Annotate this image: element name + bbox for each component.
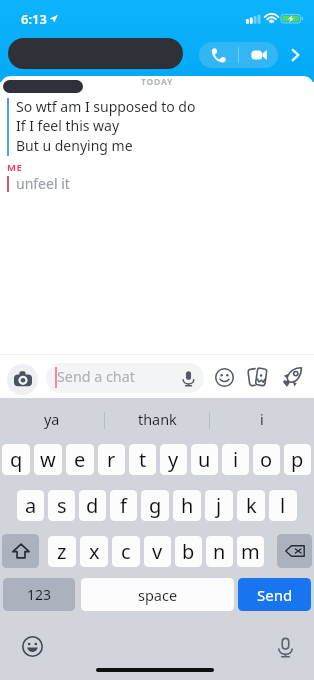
staticText: h [181, 492, 194, 519]
staticText: b [182, 538, 195, 565]
staticText: w [40, 446, 56, 473]
button[interactable]: ya [0, 398, 104, 442]
button[interactable]: space [81, 578, 234, 611]
button[interactable]: h [173, 490, 201, 521]
button[interactable]: m [237, 536, 264, 567]
button[interactable]: Emoji keyboard [21, 635, 44, 658]
staticText: TODAY [141, 76, 174, 88]
button[interactable]: j [205, 490, 233, 521]
staticText: But u denying me [16, 136, 133, 155]
button[interactable]: Emoji [213, 366, 235, 388]
staticText: u [198, 446, 211, 473]
button[interactable]: Camera [7, 364, 38, 395]
staticText: thank [138, 410, 177, 430]
staticText: m [241, 538, 260, 565]
button[interactable]: v [144, 536, 171, 567]
button[interactable]: Send rocket [281, 366, 303, 388]
staticText: d [86, 492, 99, 519]
button[interactable]: Video call [239, 42, 278, 68]
staticText: i [260, 410, 264, 430]
staticText: e [74, 446, 86, 473]
staticText: l [280, 492, 286, 519]
button[interactable]: p [284, 444, 311, 475]
staticText: z [57, 538, 67, 565]
button[interactable]: z [48, 536, 76, 567]
button[interactable]: r [98, 444, 125, 475]
button[interactable]: c [112, 536, 140, 567]
button[interactable]: o [253, 444, 280, 475]
button[interactable]: y [160, 444, 187, 475]
button[interactable]: k [237, 490, 265, 521]
staticText: If I feel this way [16, 116, 120, 135]
staticText: Send [257, 585, 293, 605]
staticText: Send a chat [57, 367, 135, 386]
button[interactable]: u [191, 444, 218, 475]
button[interactable]: t [129, 444, 156, 475]
staticText: y [168, 446, 179, 473]
staticText: unfeel it [16, 174, 70, 193]
staticText: i [233, 446, 239, 473]
staticText: k [246, 492, 257, 519]
button[interactable]: d [79, 490, 106, 521]
staticText: q [10, 446, 23, 473]
button[interactable]: q [2, 444, 30, 475]
staticText: n [213, 538, 226, 565]
staticText: t [139, 446, 147, 473]
staticText: 6:13 [21, 10, 47, 28]
staticText: 123 [27, 585, 52, 604]
staticText: p [291, 446, 304, 473]
staticText: j [216, 492, 222, 519]
button[interactable]: w [34, 444, 62, 475]
button[interactable]: Backspace [277, 534, 312, 568]
staticText: ME [7, 161, 23, 174]
staticText: f [120, 492, 127, 519]
button[interactable]: f [110, 490, 137, 521]
button[interactable]: i [210, 398, 314, 442]
staticText: g [149, 492, 162, 519]
button[interactable]: Conversation [8, 38, 183, 69]
staticText: o [260, 446, 273, 473]
button[interactable]: g [141, 490, 169, 521]
button[interactable]: s [48, 490, 75, 521]
button[interactable]: x [80, 536, 108, 567]
staticText: x [89, 538, 100, 565]
staticText: c [121, 538, 131, 565]
button[interactable]: Stickers [246, 366, 268, 388]
staticText: space [138, 585, 178, 605]
button[interactable]: n [206, 536, 233, 567]
staticText: r [107, 446, 116, 473]
staticText: s [57, 492, 67, 519]
button[interactable]: Shift [2, 534, 39, 568]
button[interactable] [46, 363, 204, 393]
button[interactable]: 123 [3, 578, 75, 611]
staticText: a [25, 492, 37, 519]
staticText: v [152, 538, 163, 565]
button[interactable]: l [269, 490, 297, 521]
staticText: So wtf am I supposed to do [16, 97, 196, 116]
button[interactable]: a [17, 490, 44, 521]
button[interactable]: e [66, 444, 94, 475]
button[interactable]: thank [105, 398, 209, 442]
button[interactable]: i [222, 444, 249, 475]
button[interactable]: Voice call [199, 42, 238, 68]
button[interactable]: b [175, 536, 202, 567]
button[interactable]: Dictation [274, 636, 297, 659]
staticText: ya [44, 410, 60, 430]
button[interactable]: Voice note [176, 366, 200, 390]
button[interactable]: More options [282, 42, 308, 68]
button[interactable]: Send [238, 578, 311, 611]
